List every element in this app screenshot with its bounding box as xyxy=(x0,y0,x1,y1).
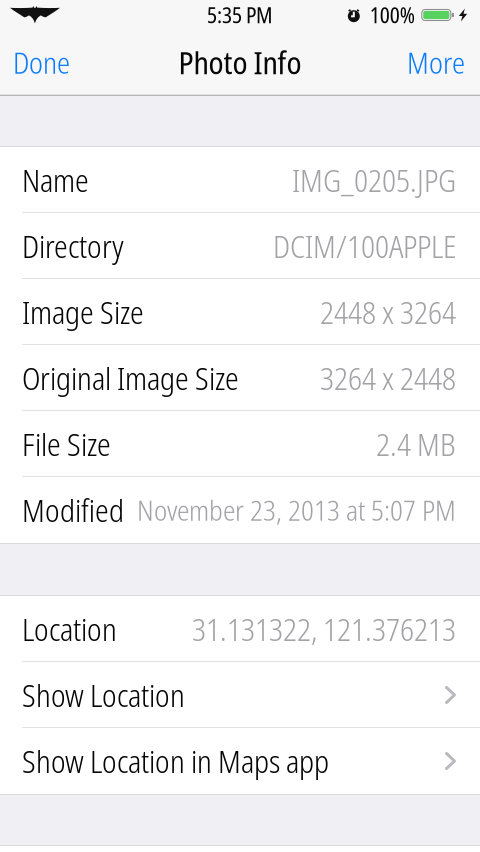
staticText: Show Location in Maps app xyxy=(22,740,329,782)
staticText: Original Image Size xyxy=(22,357,239,399)
staticText: 5:35 PM xyxy=(207,0,273,30)
staticText: November 23, 2013 at 5:07 PM xyxy=(137,491,456,529)
staticText: Photo Info xyxy=(178,41,301,83)
staticText: 31.131322, 121.376213 xyxy=(192,608,456,650)
staticText: 2448 x 3264 xyxy=(320,291,456,333)
staticText: DCIM/100APPLE xyxy=(273,225,456,267)
button[interactable]: Done xyxy=(13,42,70,82)
staticText: Location xyxy=(22,608,117,650)
button[interactable]: More xyxy=(407,42,465,82)
staticText: Directory xyxy=(22,225,124,267)
staticText: Modified xyxy=(22,489,124,531)
button[interactable]: Show Location in Maps app xyxy=(0,728,480,794)
staticText: 2.4 MB xyxy=(376,423,456,465)
staticText: IMG_0205.JPG xyxy=(292,159,456,201)
button[interactable]: Show Location xyxy=(0,662,480,728)
staticText: File Size xyxy=(22,423,111,465)
staticText: Image Size xyxy=(22,291,144,333)
staticText: Done xyxy=(13,42,70,82)
staticText: More xyxy=(407,42,465,82)
staticText: Show Location xyxy=(22,674,185,716)
staticText: Name xyxy=(22,159,89,201)
staticText: 3264 x 2448 xyxy=(320,357,456,399)
staticText: 100% xyxy=(370,0,415,30)
